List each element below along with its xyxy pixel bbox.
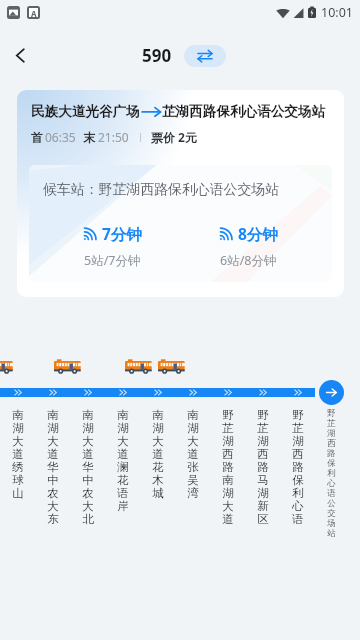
staticText: 湾 — [187, 486, 199, 499]
staticText: 南 — [82, 408, 94, 421]
staticText: 21:50 — [98, 129, 129, 145]
staticText: 野 — [327, 408, 336, 418]
staticText: 新 — [257, 499, 269, 512]
staticText: 西 — [327, 438, 336, 448]
staticText: 道 — [117, 447, 129, 460]
staticText: 湖 — [257, 434, 269, 447]
button[interactable]: 南 — [35, 408, 70, 525]
staticText: 道 — [82, 447, 94, 460]
staticText: 湖 — [222, 434, 234, 447]
staticText: 农 — [82, 486, 94, 499]
staticText: 路 — [327, 448, 336, 458]
staticText: 西 — [222, 447, 234, 460]
button[interactable]: 南 — [105, 408, 140, 512]
staticText: 大 — [152, 434, 164, 447]
staticText: 芷湖西路保利心语公交场站 — [162, 103, 326, 120]
staticText: 岸 — [117, 499, 129, 512]
staticText: 湖 — [187, 421, 199, 434]
staticText: 利 — [327, 468, 336, 478]
staticText: 场 — [327, 518, 336, 528]
staticText: 10:01 — [321, 4, 353, 21]
staticText: 大 — [117, 434, 129, 447]
button[interactable]: Back — [2, 37, 38, 73]
button[interactable]: 野 — [245, 408, 280, 525]
staticText: 民族大道光谷广场 — [31, 103, 140, 120]
staticText: 城 — [152, 486, 164, 499]
staticText: 东 — [47, 512, 59, 525]
staticText: 南 — [187, 408, 199, 421]
button[interactable]: 南 — [70, 408, 105, 525]
staticText: 交 — [327, 508, 336, 518]
staticText: 利 — [292, 486, 304, 499]
staticText: 西 — [292, 447, 304, 460]
staticText: 湖 — [82, 421, 94, 434]
staticText: 芷 — [222, 421, 234, 434]
button[interactable]: 野 — [280, 408, 315, 525]
staticText: 路 — [292, 460, 304, 473]
staticText: 华 — [82, 460, 94, 473]
staticText: 湖 — [152, 421, 164, 434]
staticText: 道 — [187, 447, 199, 460]
staticText: 南 — [12, 408, 24, 421]
staticText: 中 — [82, 473, 94, 486]
staticText: 保 — [327, 458, 336, 468]
staticText: 心 — [292, 499, 304, 512]
staticText: 中 — [47, 473, 59, 486]
staticText: 道 — [47, 447, 59, 460]
button[interactable]: Next — [319, 380, 344, 405]
staticText: 北 — [82, 512, 94, 525]
staticText: 大 — [187, 434, 199, 447]
staticText: 道 — [222, 512, 234, 525]
staticText: 末 — [83, 130, 95, 145]
staticText: 6站/8分钟 — [220, 252, 277, 269]
staticText: 吴 — [187, 473, 199, 486]
staticText: 野 — [222, 408, 234, 421]
staticText: 湖 — [12, 421, 24, 434]
staticText: 8分钟 — [238, 223, 278, 244]
staticText: 芷 — [292, 421, 304, 434]
staticText: 湖 — [117, 421, 129, 434]
staticText: 路 — [222, 460, 234, 473]
button[interactable]: 南 — [0, 408, 35, 499]
button[interactable]: 野 — [210, 408, 245, 525]
staticText: 农 — [47, 486, 59, 499]
button[interactable]: 南 — [175, 408, 210, 499]
staticText: 南 — [152, 408, 164, 421]
staticText: 站 — [327, 528, 336, 538]
staticText: 澜 — [117, 460, 129, 473]
staticText: 语 — [327, 488, 336, 498]
staticText: 2元 — [178, 129, 197, 145]
staticText: 大 — [82, 499, 94, 512]
staticText: A — [31, 8, 37, 17]
staticText: 花 — [117, 473, 129, 486]
staticText: 大 — [222, 499, 234, 512]
staticText: 公 — [327, 498, 336, 508]
staticText: 首 — [31, 130, 43, 145]
button[interactable]: 民族大道光谷广场 — [17, 90, 344, 297]
staticText: 语 — [292, 512, 304, 525]
staticText: 湖 — [292, 434, 304, 447]
staticText: 山 — [12, 486, 24, 499]
button[interactable]: Switch direction — [184, 45, 226, 67]
staticText: 区 — [257, 512, 269, 525]
staticText: 绣 — [12, 460, 24, 473]
staticText: 张 — [187, 460, 199, 473]
staticText: 马 — [257, 473, 269, 486]
staticText: 语 — [117, 486, 129, 499]
staticText: 06:35 — [45, 129, 76, 145]
staticText: 球 — [12, 473, 24, 486]
button[interactable]: 南 — [140, 408, 175, 499]
staticText: 花 — [152, 460, 164, 473]
button[interactable]: 野 — [315, 408, 347, 538]
staticText: 5站/7分钟 — [84, 252, 141, 269]
staticText: 芷 — [257, 421, 269, 434]
staticText: 南 — [117, 408, 129, 421]
staticText: 木 — [152, 473, 164, 486]
staticText: 野 — [292, 408, 304, 421]
staticText: 大 — [82, 434, 94, 447]
staticText: 湖 — [327, 428, 336, 438]
staticText: 候车站：野芷湖西路保利心语公交场站 — [43, 181, 280, 199]
staticText: 道 — [152, 447, 164, 460]
staticText: 路 — [257, 460, 269, 473]
staticText: 湖 — [257, 486, 269, 499]
